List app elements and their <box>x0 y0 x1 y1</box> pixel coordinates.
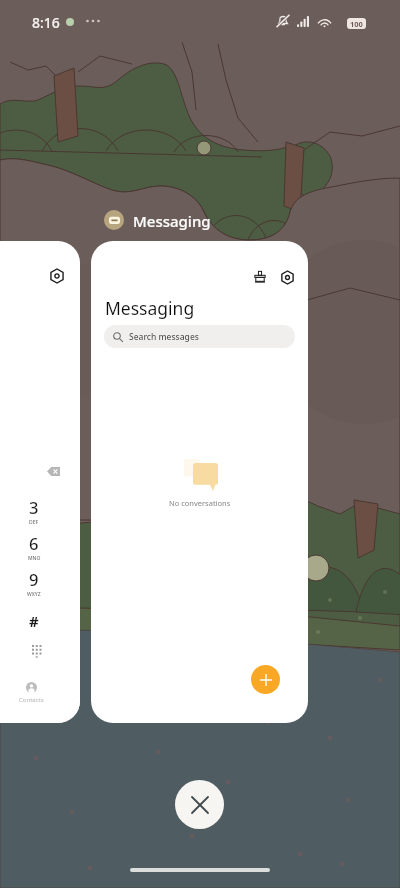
button[interactable]: # <box>18 605 50 637</box>
staticText: 8:16 <box>32 13 60 32</box>
staticText: WXYZ <box>27 591 41 598</box>
staticText: 100 <box>350 19 363 29</box>
button[interactable]: Search messages <box>104 325 295 348</box>
button[interactable]: New conversation <box>251 665 280 694</box>
button[interactable]: Clean up <box>246 263 274 291</box>
button[interactable]: Settings <box>273 263 301 291</box>
staticText: No conversations <box>169 498 231 508</box>
staticText: 9 <box>29 568 39 590</box>
button[interactable]: Keypad <box>24 637 48 661</box>
button[interactable]: Settings <box>44 263 70 289</box>
staticText: Contacts <box>19 696 44 704</box>
staticText: 6 <box>29 532 39 554</box>
button[interactable]: 3 <box>17 496 51 526</box>
button[interactable]: Clean up <box>91 241 308 723</box>
button[interactable]: Messaging app icon <box>104 210 124 230</box>
staticText: Messaging <box>133 211 211 231</box>
button[interactable]: 9 <box>17 568 51 598</box>
staticText: DEF <box>29 519 39 526</box>
staticText: MNO <box>28 555 41 562</box>
button[interactable]: 6 <box>17 532 51 562</box>
button[interactable]: Contacts <box>8 682 54 704</box>
staticText: Messaging <box>105 296 195 320</box>
staticText: 3 <box>29 496 39 518</box>
button[interactable]: Close all <box>175 780 224 829</box>
button[interactable]: Settings <box>0 241 80 723</box>
other: Battery 100 percent <box>347 18 366 29</box>
staticText: # <box>29 611 39 631</box>
staticText: Search messages <box>129 331 199 343</box>
